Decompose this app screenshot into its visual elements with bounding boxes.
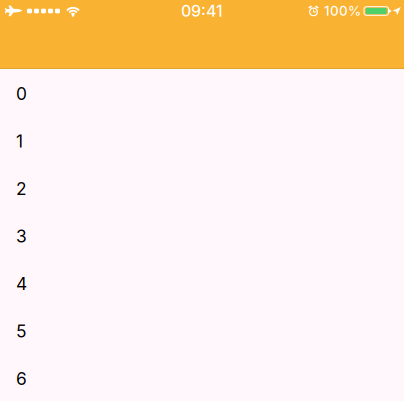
- staticText: 5: [16, 321, 27, 342]
- button[interactable]: 4: [0, 260, 404, 307]
- staticText: 09:41: [181, 1, 223, 21]
- staticText: 3: [16, 226, 27, 247]
- button[interactable]: 6: [0, 355, 404, 401]
- staticText: 0: [16, 83, 27, 104]
- button[interactable]: 0: [0, 70, 404, 117]
- staticText: 4: [16, 273, 27, 294]
- staticText: 100%: [324, 3, 361, 19]
- button[interactable]: 3: [0, 212, 404, 260]
- button[interactable]: 5: [0, 307, 404, 355]
- staticText: 1: [16, 131, 23, 152]
- staticText: 2: [16, 178, 27, 199]
- button[interactable]: 2: [0, 165, 404, 212]
- staticText: 6: [16, 368, 27, 389]
- button[interactable]: 1: [0, 117, 404, 165]
